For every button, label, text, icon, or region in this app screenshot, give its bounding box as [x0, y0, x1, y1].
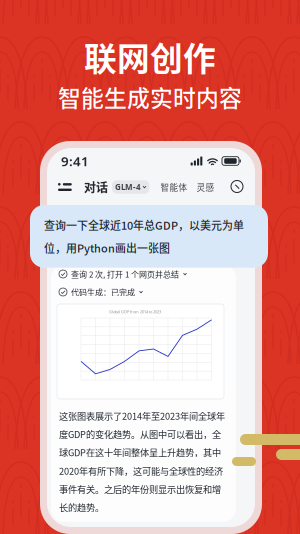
- staticText: 9:41: [61, 152, 89, 170]
- button[interactable]: 代码生成：已完成: [51, 283, 236, 301]
- button[interactable]: 对话: [84, 178, 149, 196]
- button[interactable]: 查询 2 次, 打开 1 个网页并总结: [51, 265, 236, 283]
- staticText: 代码生成：已完成: [71, 286, 135, 298]
- staticText: 智能生成实时内容: [58, 80, 242, 113]
- button[interactable]: 会话列表: [58, 180, 73, 193]
- staticText: 对话: [84, 178, 108, 196]
- button[interactable]: 智能体: [160, 181, 187, 193]
- staticText: 这张图表展示了2014年至2023年间全球年度GDP的变化趋势。从图中可以看出，…: [59, 409, 225, 514]
- staticText: 查询一下全球近10年总GDP，以美元为单位，用Python画出一张图: [44, 217, 244, 256]
- staticText: Global GDP from 2014 to 2023: [109, 309, 161, 314]
- button[interactable]: 搜索: [231, 180, 244, 193]
- staticText: GLM-4: [115, 182, 141, 192]
- staticText: 联网创作: [84, 33, 216, 80]
- button[interactable]: 灵感: [196, 181, 214, 193]
- staticText: 智能体: [160, 181, 187, 193]
- staticText: 灵感: [196, 181, 214, 193]
- staticText: 查询 2 次, 打开 1 个网页并总结: [71, 268, 179, 280]
